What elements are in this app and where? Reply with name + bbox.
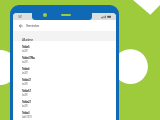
button[interactable]: Nokia 5.1	[13, 85, 116, 96]
staticText: Nokia 2.1	[22, 100, 31, 104]
staticText: Nokia 5	[22, 45, 30, 49]
staticText: Nokia 3.1 Plus	[22, 56, 35, 60]
staticText: Early Q1 2019	[22, 115, 32, 118]
staticText: Jan 2019	[22, 60, 28, 63]
staticText: Nokia 5.1	[22, 89, 31, 93]
staticText: Jan 2019	[22, 49, 28, 52]
button[interactable]: Nokia 3.1	[13, 74, 116, 85]
button[interactable]: Nokia 6	[13, 63, 116, 74]
staticText: Nokia 3	[22, 111, 30, 115]
staticText: Nokia 3.1	[22, 78, 31, 82]
staticText: Reminders	[26, 23, 39, 28]
staticText: All a-time	[22, 38, 33, 41]
staticText: Jan 2019	[22, 93, 28, 96]
staticText: Jan 2019	[22, 104, 28, 107]
button[interactable]: Nokia 3	[13, 107, 116, 118]
staticText: Nokia 6	[22, 67, 30, 71]
staticText: 9:41	[18, 15, 22, 19]
button[interactable]: Nokia 5	[13, 41, 116, 52]
staticText: Jan 2019	[22, 82, 28, 85]
button[interactable]: Nokia 2.1	[13, 96, 116, 107]
button[interactable]: Back	[17, 22, 24, 29]
staticText: Jan 2019	[22, 71, 28, 74]
button[interactable]: Nokia 3.1 Plus	[13, 52, 116, 63]
